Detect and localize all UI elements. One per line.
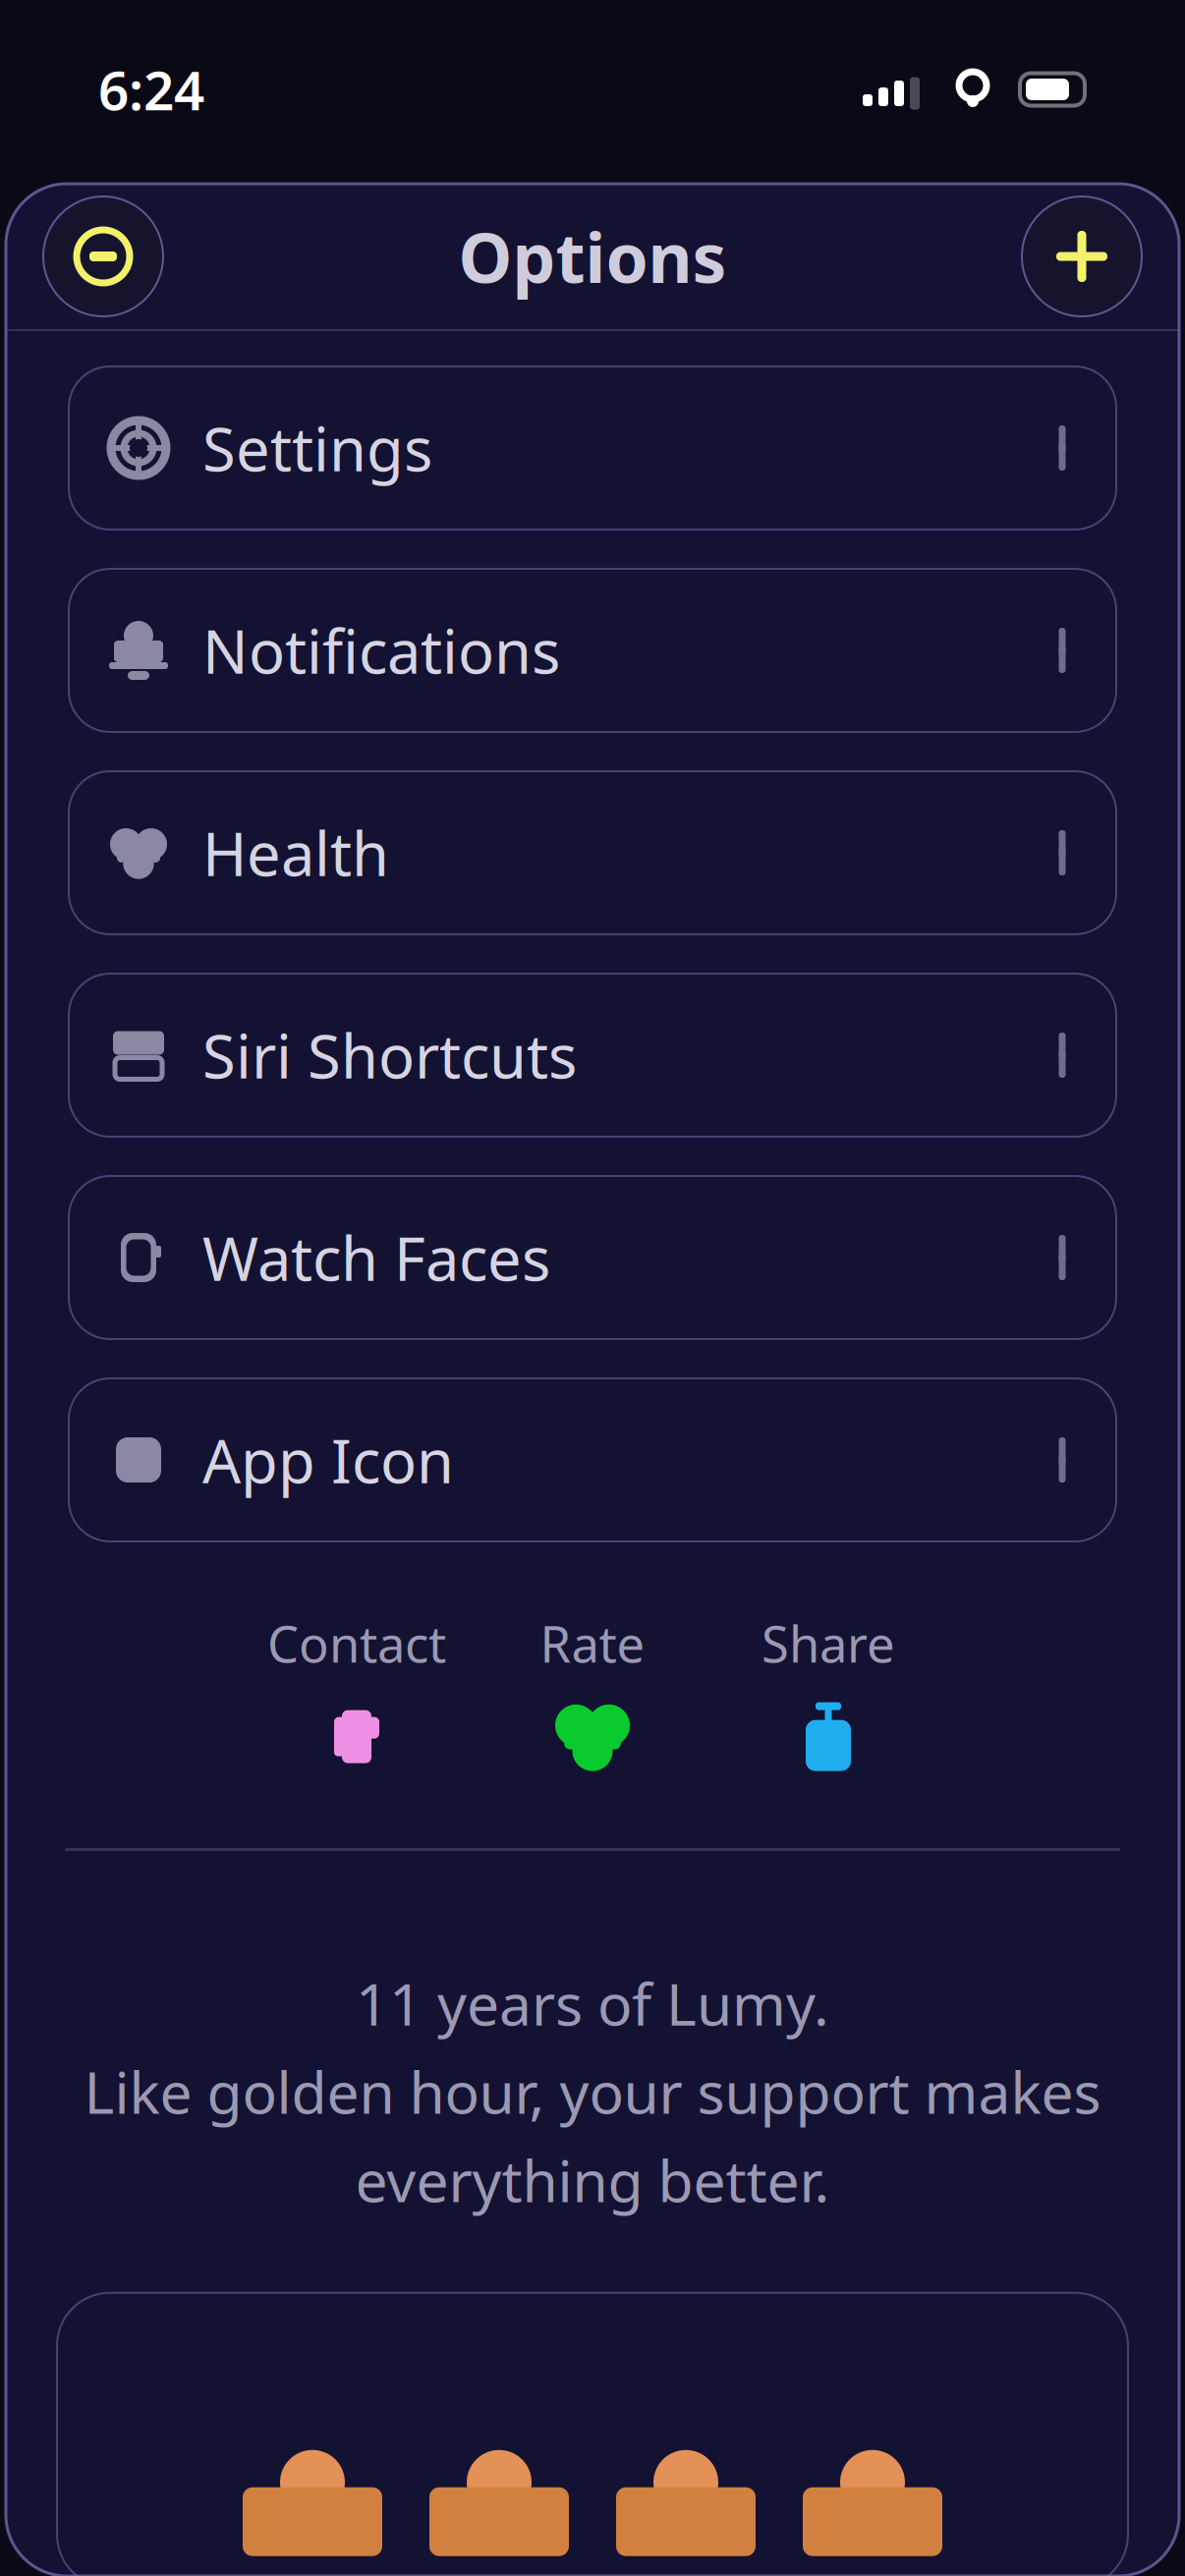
- staticText: Notifications: [202, 610, 560, 690]
- staticText: Watch Faces: [202, 1218, 550, 1298]
- button[interactable]: Lumy: [43, 196, 163, 316]
- staticText: Health: [202, 813, 389, 893]
- staticText: everything better.: [355, 2142, 830, 2218]
- staticText: 6:24: [98, 54, 204, 125]
- button[interactable]: Close: [1022, 196, 1142, 316]
- button[interactable]: Settings: [69, 366, 1116, 530]
- staticText: Contact: [267, 1610, 446, 1676]
- staticText: Rate: [540, 1610, 645, 1676]
- staticText: Options: [458, 211, 727, 302]
- staticText: App Icon: [202, 1420, 454, 1500]
- button[interactable]: App Icon: [69, 1378, 1116, 1541]
- staticText: Settings: [202, 408, 432, 488]
- button[interactable]: Siri Shortcuts: [69, 974, 1116, 1137]
- button[interactable]: Health: [69, 771, 1116, 934]
- button[interactable]: Contact: [239, 1610, 475, 1797]
- button[interactable]: Watch Faces: [69, 1176, 1116, 1339]
- button[interactable]: Notifications: [69, 569, 1116, 732]
- staticText: 11 years of Lumy.: [356, 1965, 829, 2041]
- button[interactable]: Rate: [475, 1610, 710, 1797]
- button[interactable]: Share: [710, 1610, 946, 1797]
- staticText: Siri Shortcuts: [202, 1015, 577, 1095]
- staticText: Like golden hour, your support makes: [84, 2053, 1101, 2130]
- staticText: Share: [762, 1610, 895, 1676]
